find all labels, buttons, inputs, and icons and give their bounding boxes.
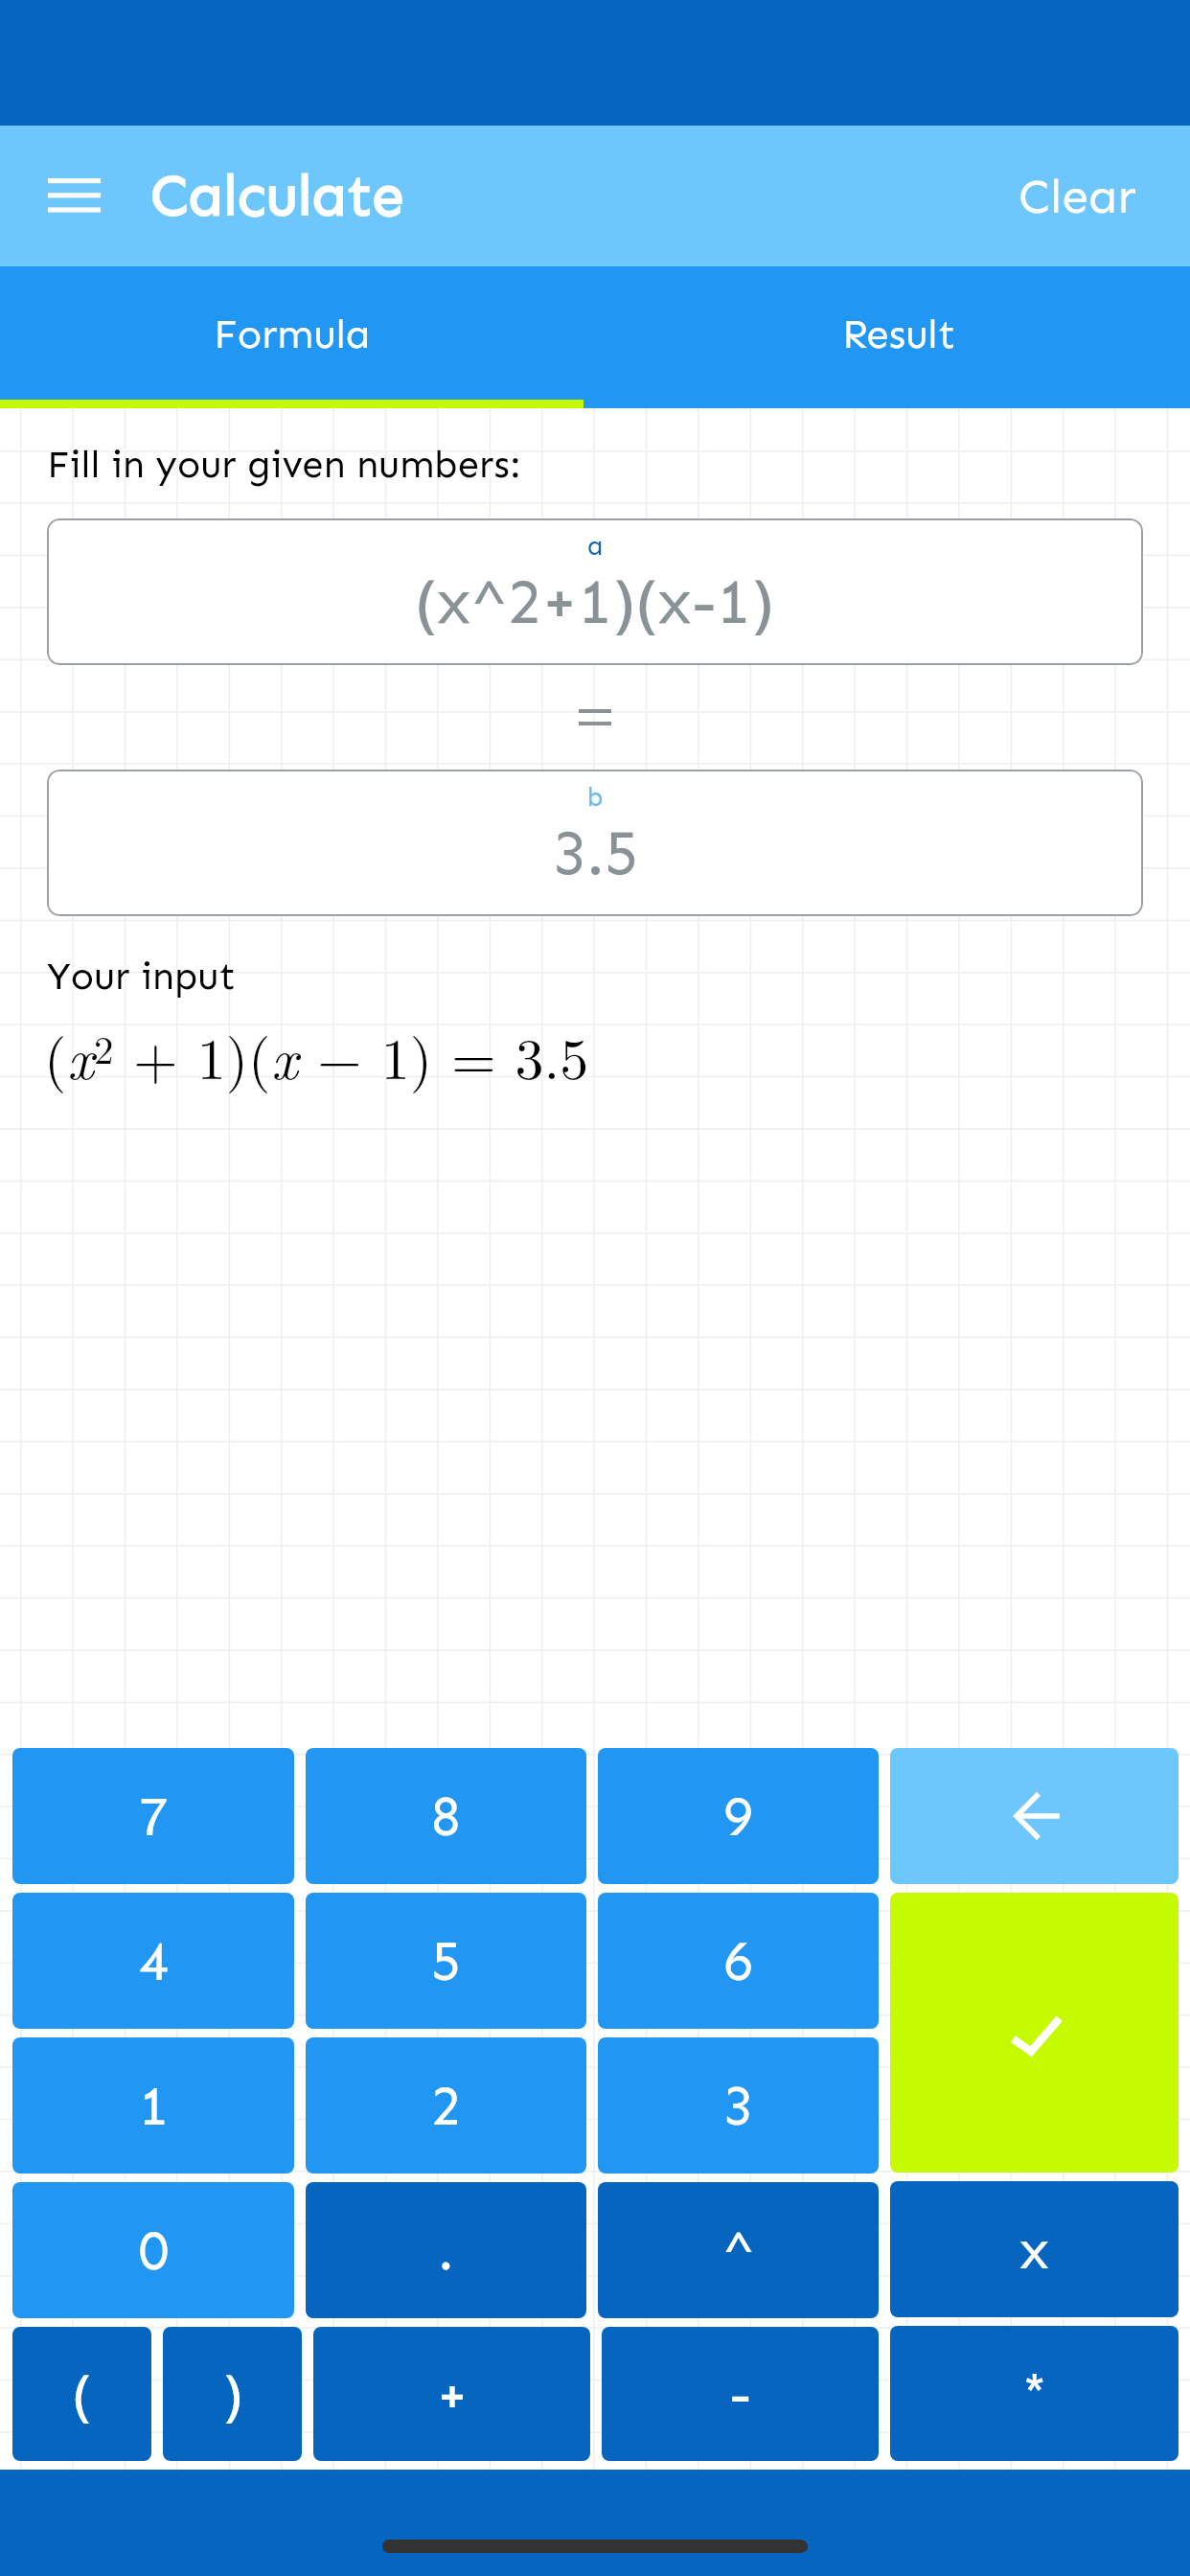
staticText: 8 [431, 1783, 461, 1850]
staticText: Fill in your given numbers: [47, 441, 521, 487]
staticText: x [1019, 2217, 1049, 2283]
staticText: ( [72, 2361, 92, 2427]
button[interactable]: Backspace [890, 1748, 1179, 1884]
staticText: 7 [139, 1783, 169, 1850]
staticText: + [436, 2361, 469, 2427]
staticText: 2 [431, 2073, 461, 2139]
staticText: ^ [722, 2218, 755, 2284]
staticText: x [271, 1014, 298, 1095]
button[interactable]: - [602, 2327, 879, 2461]
button[interactable]: Open navigation menu [0, 126, 149, 266]
staticText: 6 [723, 1928, 753, 1994]
button[interactable]: Calculate result [890, 1893, 1179, 2173]
staticText: 3.5 [553, 816, 638, 890]
staticText: 1 [139, 2073, 169, 2139]
button[interactable]: 0 [12, 2182, 294, 2318]
button[interactable]: + [313, 2327, 590, 2461]
button[interactable]: ( [12, 2327, 151, 2461]
staticText: x [67, 1014, 94, 1095]
staticText: Result [842, 310, 956, 359]
button[interactable]: b [47, 770, 1143, 916]
staticText: + 1)( [114, 1014, 271, 1095]
button[interactable]: 6 [598, 1893, 879, 2029]
button[interactable]: ^ [598, 2182, 879, 2318]
button[interactable]: Result [595, 266, 1190, 408]
staticText: b [587, 782, 604, 813]
button[interactable]: x [890, 2181, 1179, 2317]
staticText: 4 [139, 1928, 169, 1994]
staticText: − 1) = 3.5 [298, 1014, 589, 1095]
button[interactable]: ) [163, 2327, 302, 2461]
button[interactable]: 9 [598, 1748, 879, 1884]
button[interactable]: 1 [12, 2037, 294, 2173]
staticText: * [1021, 2360, 1048, 2426]
staticText: ) [222, 2361, 243, 2427]
staticText: a [587, 531, 604, 562]
button[interactable]: 8 [306, 1748, 586, 1884]
button[interactable]: * [890, 2326, 1179, 2461]
staticText: 3 [723, 2073, 753, 2139]
button[interactable]: 3 [598, 2037, 879, 2173]
staticText: Your input [47, 953, 236, 999]
button[interactable]: Clear [980, 126, 1190, 266]
button[interactable]: . [306, 2182, 586, 2318]
staticText: 2 [94, 1020, 114, 1075]
button[interactable]: a [47, 518, 1143, 665]
staticText: 5 [431, 1928, 461, 1994]
staticText: (x^2+1)(x-1) [415, 564, 775, 639]
button[interactable]: Formula [0, 266, 595, 408]
staticText: 9 [723, 1783, 753, 1850]
button[interactable]: 2 [306, 2037, 586, 2173]
button[interactable]: 7 [12, 1748, 294, 1884]
staticText: 0 [139, 2218, 169, 2284]
staticText: Calculate [150, 161, 404, 230]
staticText: ( [44, 1014, 67, 1095]
staticText: Formula [214, 310, 371, 359]
button[interactable]: 4 [12, 1893, 294, 2029]
staticText: - [729, 2361, 752, 2427]
staticText: . [438, 2218, 454, 2284]
staticText: Clear [1018, 168, 1136, 225]
button[interactable]: 5 [306, 1893, 586, 2029]
